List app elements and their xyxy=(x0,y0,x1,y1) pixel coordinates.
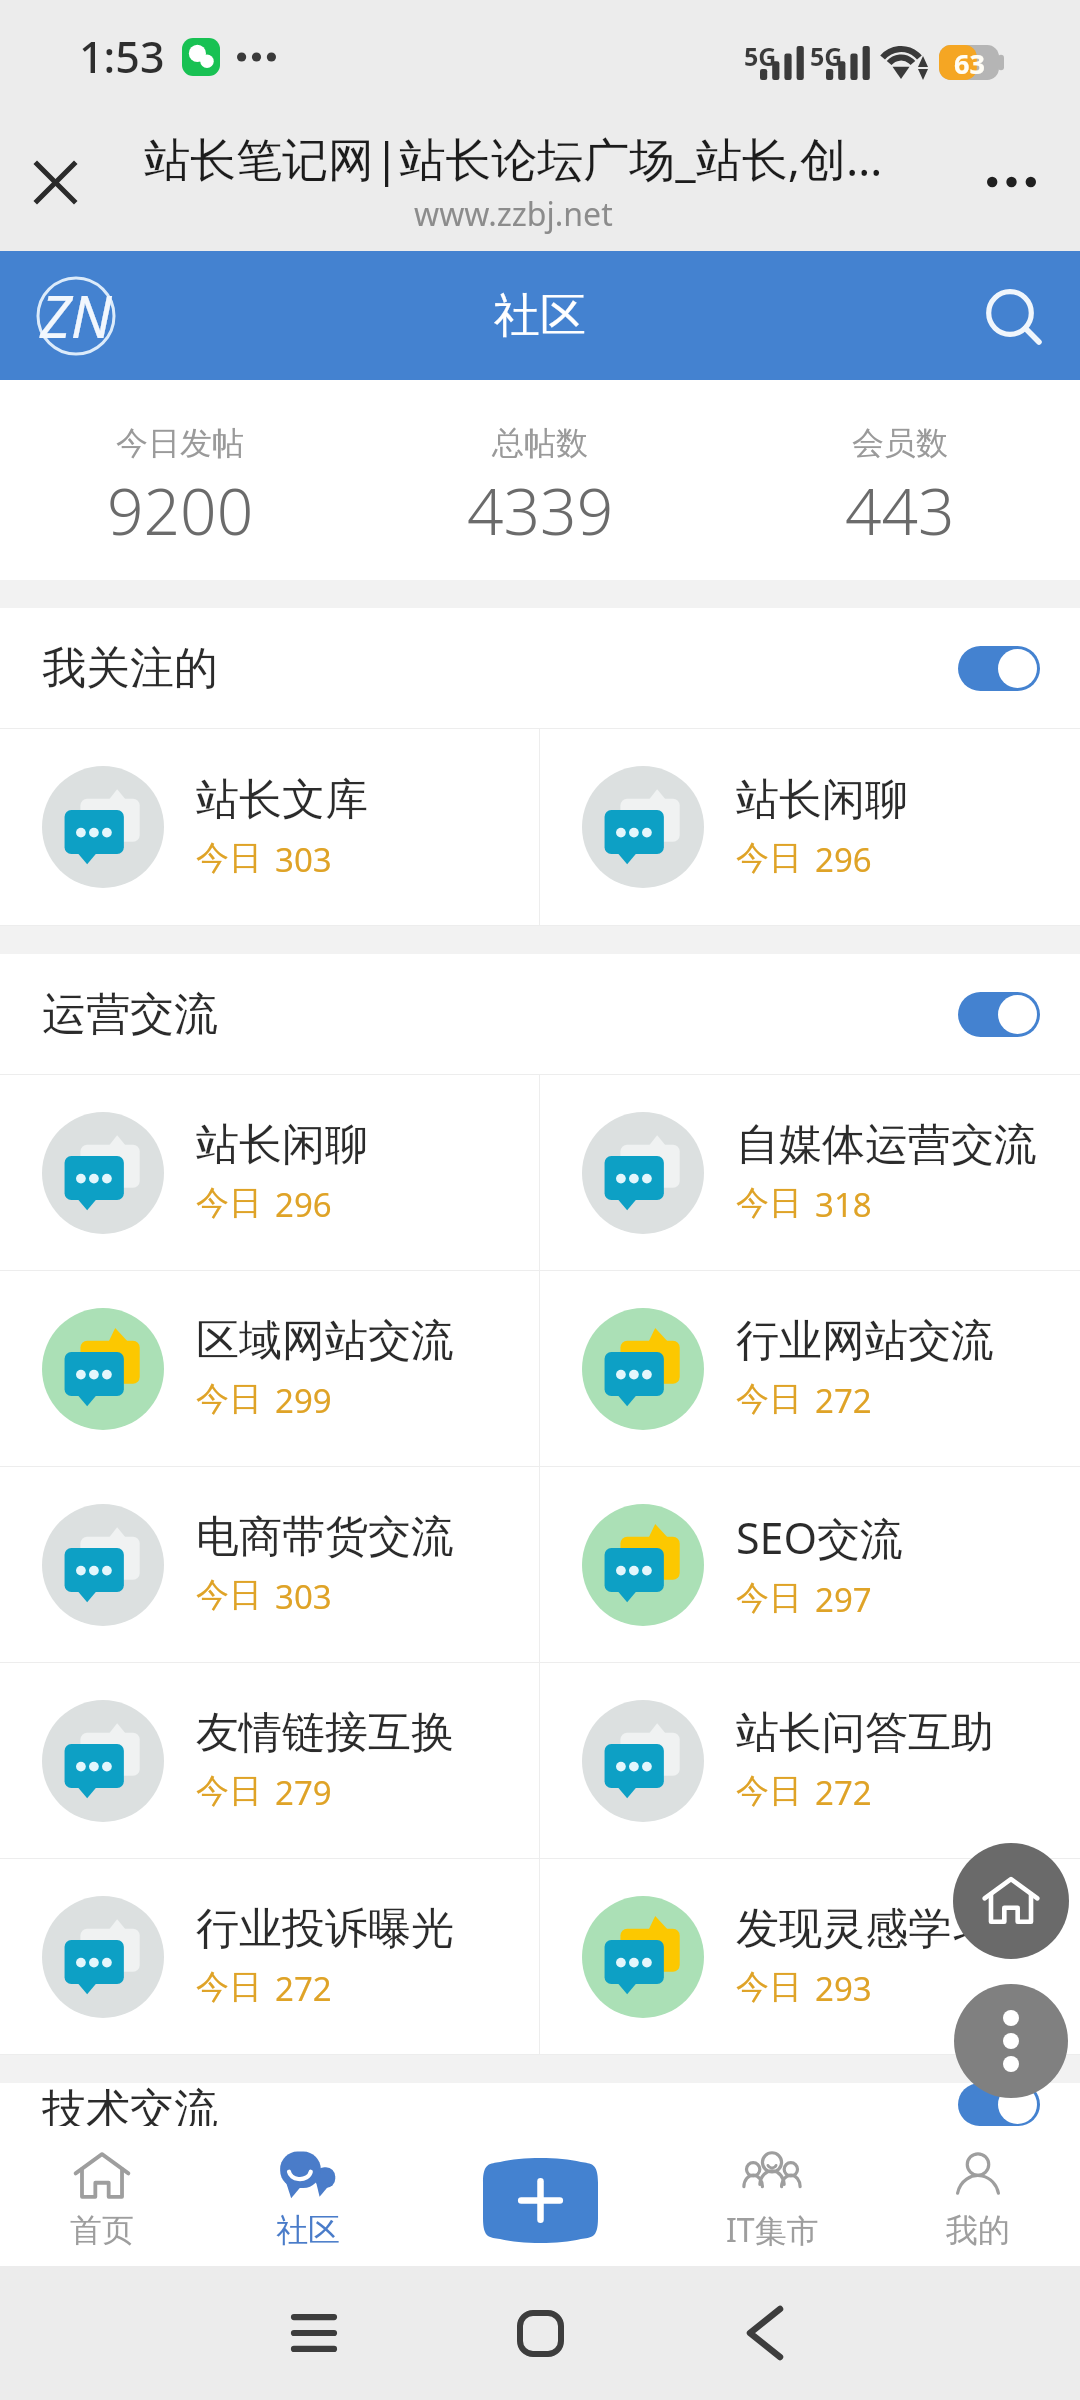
staticText: 今日 xyxy=(736,1182,802,1224)
staticText: 今日 xyxy=(736,837,802,879)
staticText: 296 xyxy=(275,1182,332,1227)
staticText: 5G xyxy=(810,39,843,73)
button[interactable]: 我的 xyxy=(876,2126,1080,2266)
staticText: 自媒体运营交流 xyxy=(736,1118,1037,1172)
staticText: 首页 xyxy=(70,2210,134,2250)
staticText: 今日 xyxy=(736,1378,802,1420)
staticText: 今日 xyxy=(196,1378,262,1420)
button[interactable]: 站长闲聊 xyxy=(0,1075,539,1270)
staticText: www.zzbj.net xyxy=(414,192,613,236)
staticText: 9200 xyxy=(107,467,254,554)
staticText: 272 xyxy=(815,1770,872,1815)
staticText: 5G xyxy=(744,39,777,73)
button[interactable]: 行业网站交流 xyxy=(540,1271,1080,1466)
button[interactable]: IT集市 xyxy=(668,2126,876,2266)
staticText: 今日 xyxy=(196,1966,262,2008)
button[interactable]: Back xyxy=(719,2287,811,2379)
staticText: 我关注的 xyxy=(42,641,218,696)
staticText: 区域网站交流 xyxy=(196,1314,454,1368)
staticText: 总帖数 xyxy=(492,423,588,463)
button[interactable]: 站长文库 xyxy=(0,729,539,925)
button[interactable]: 今日发帖 xyxy=(0,380,360,580)
button[interactable]: Back to home xyxy=(953,1843,1069,1959)
button[interactable]: More options xyxy=(968,139,1054,225)
staticText: 友情链接互换 xyxy=(196,1706,454,1760)
staticText: 297 xyxy=(815,1577,872,1622)
button[interactable]: 总帖数 xyxy=(360,380,720,580)
staticText: 今日 xyxy=(196,1770,262,1812)
staticText: 行业投诉曝光 xyxy=(196,1902,454,1956)
staticText: 社区 xyxy=(494,287,586,345)
staticText: SEO交流 xyxy=(736,1508,904,1567)
staticText: 会员数 xyxy=(852,423,948,463)
staticText: 运营交流 xyxy=(42,987,218,1042)
button[interactable]: 电商带货交流 xyxy=(0,1467,539,1662)
staticText: 技术交流 xyxy=(42,2083,218,2126)
staticText: 今日 xyxy=(196,1574,262,1616)
button[interactable]: Search xyxy=(970,270,1062,362)
button[interactable]: Toggle 运营交流 xyxy=(958,992,1040,1037)
button[interactable]: Close xyxy=(11,138,99,226)
button[interactable]: 首页 xyxy=(0,2126,204,2266)
staticText: 行业网站交流 xyxy=(736,1314,994,1368)
staticText: 今日 xyxy=(736,1577,802,1619)
staticText: 电商带货交流 xyxy=(196,1510,454,1564)
button[interactable]: 自媒体运营交流 xyxy=(540,1075,1080,1270)
staticText: 我的 xyxy=(946,2210,1010,2250)
button[interactable]: Toggle 我关注的 xyxy=(958,646,1040,691)
button[interactable]: 社区 xyxy=(204,2126,412,2266)
staticText: 279 xyxy=(275,1770,332,1815)
staticText: 272 xyxy=(275,1966,332,2011)
staticText: 272 xyxy=(815,1378,872,1423)
button[interactable]: 站长问答互助 xyxy=(540,1663,1080,1858)
staticText: 443 xyxy=(845,467,955,554)
button[interactable]: 行业投诉曝光 xyxy=(0,1859,539,2054)
staticText: 1:53 xyxy=(79,27,165,86)
staticText: 站长笔记网|站长论坛广场_站长,创… xyxy=(144,127,883,190)
staticText: 今日 xyxy=(736,1966,802,2008)
button[interactable]: Toggle 技术交流 xyxy=(958,2083,1040,2126)
staticText: 站长文库 xyxy=(196,773,368,827)
staticText: 299 xyxy=(275,1378,332,1423)
staticText: 293 xyxy=(815,1966,872,2011)
button[interactable]: Site logo xyxy=(30,270,122,362)
button[interactable]: SEO交流 xyxy=(540,1467,1080,1662)
staticText: 63 xyxy=(954,45,985,80)
staticText: 303 xyxy=(275,837,332,882)
staticText: 今日发帖 xyxy=(116,423,244,463)
button[interactable]: Home xyxy=(494,2287,586,2379)
staticText: 站长闲聊 xyxy=(196,1118,368,1172)
button[interactable]: 发现灵感学习 xyxy=(540,1859,1080,2054)
button[interactable]: Recents xyxy=(268,2287,360,2379)
button[interactable]: More actions xyxy=(954,1984,1068,2098)
staticText: 今日 xyxy=(736,1770,802,1812)
staticText: ZN xyxy=(40,276,112,355)
staticText: 296 xyxy=(815,837,872,882)
staticText: 站长闲聊 xyxy=(736,773,908,827)
staticText: 社区 xyxy=(276,2210,340,2250)
button[interactable]: 友情链接互换 xyxy=(0,1663,539,1858)
staticText: 4339 xyxy=(467,467,614,554)
staticText: 今日 xyxy=(196,1182,262,1224)
staticText: 303 xyxy=(275,1574,332,1619)
button[interactable]: 站长闲聊 xyxy=(540,729,1080,925)
staticText: 站长问答互助 xyxy=(736,1706,994,1760)
staticText: 今日 xyxy=(196,837,262,879)
staticText: IT集市 xyxy=(726,2208,819,2252)
button[interactable]: 会员数 xyxy=(720,380,1080,580)
staticText: 318 xyxy=(815,1182,872,1227)
button[interactable]: Create post xyxy=(483,2158,598,2243)
staticText: 发现灵感学习 xyxy=(736,1902,994,1956)
button[interactable]: 区域网站交流 xyxy=(0,1271,539,1466)
